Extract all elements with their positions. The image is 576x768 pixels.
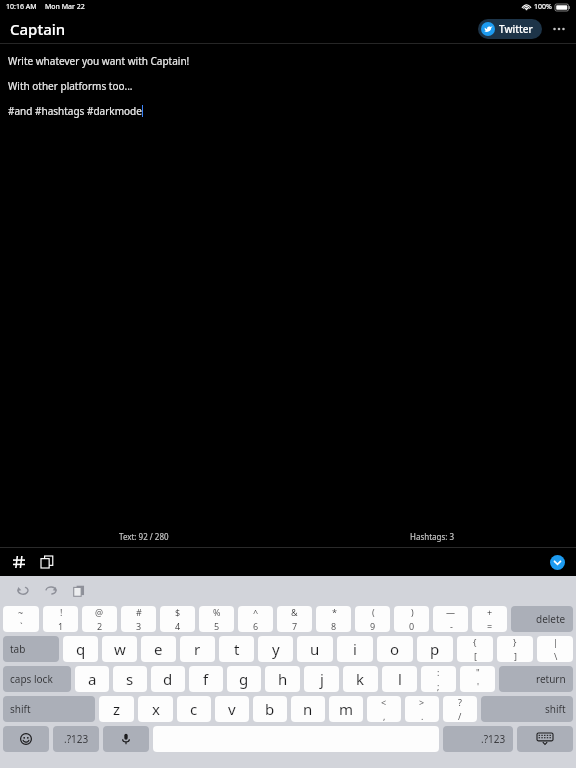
staticText: caps lock <box>10 672 53 686</box>
button[interactable]: j <box>304 666 339 692</box>
staticText: : <box>437 666 440 678</box>
button[interactable]: return <box>499 666 573 692</box>
button[interactable]: > <box>405 696 439 722</box>
staticText: Captain <box>10 19 66 39</box>
button[interactable]: r <box>180 636 215 662</box>
button[interactable]: Twitter <box>478 19 542 39</box>
button[interactable]: h <box>265 666 300 692</box>
button[interactable]: % <box>199 606 234 632</box>
button[interactable]: tab <box>3 636 59 662</box>
staticText: ! <box>60 606 63 618</box>
staticText: k <box>356 669 365 689</box>
button[interactable]: Paste <box>69 581 89 601</box>
button[interactable]: caps lock <box>3 666 71 692</box>
button[interactable]: @ <box>82 606 117 632</box>
button[interactable]: " <box>460 666 495 692</box>
button[interactable]: { <box>457 636 493 662</box>
button[interactable]: : <box>421 666 456 692</box>
button[interactable]: .?123 <box>443 726 513 752</box>
button[interactable]: m <box>329 696 363 722</box>
button[interactable]: | <box>537 636 573 662</box>
button[interactable]: w <box>102 636 137 662</box>
button[interactable]: k <box>343 666 378 692</box>
button[interactable]: & <box>277 606 312 632</box>
button[interactable]: # <box>121 606 156 632</box>
button[interactable]: delete <box>511 606 573 632</box>
button[interactable]: Undo <box>13 581 33 601</box>
button[interactable]: e <box>141 636 176 662</box>
button[interactable]: l <box>382 666 417 692</box>
staticText: & <box>291 606 298 618</box>
button[interactable]: g <box>227 666 261 692</box>
button[interactable]: Redo <box>41 581 61 601</box>
button[interactable]: } <box>497 636 533 662</box>
staticText: delete <box>536 612 566 626</box>
staticText: u <box>310 639 320 659</box>
staticText: 100% <box>534 2 552 12</box>
staticText: @ <box>95 606 104 618</box>
button[interactable]: .?123 <box>53 726 99 752</box>
button[interactable]: p <box>417 636 453 662</box>
button[interactable]: n <box>291 696 325 722</box>
button[interactable]: Insert hashtag <box>8 551 30 573</box>
button[interactable]: ~ <box>3 606 39 632</box>
button[interactable]: t <box>219 636 254 662</box>
button[interactable]: ) <box>394 606 429 632</box>
button[interactable]: $ <box>160 606 195 632</box>
button[interactable]: z <box>99 696 134 722</box>
staticText: . <box>421 710 424 722</box>
button[interactable]: ! <box>43 606 78 632</box>
staticText: ( <box>372 606 375 618</box>
button[interactable]: x <box>138 696 173 722</box>
button[interactable]: More options <box>550 20 568 38</box>
staticText: i <box>353 639 357 659</box>
button[interactable]: Copy <box>36 551 58 573</box>
button[interactable]: i <box>337 636 373 662</box>
staticText: > <box>419 696 425 708</box>
button[interactable]: f <box>189 666 223 692</box>
button[interactable]: ^ <box>238 606 273 632</box>
staticText: z <box>113 699 121 719</box>
staticText: Text: 92 / 280 <box>119 531 169 542</box>
staticText: ~ <box>18 606 24 618</box>
button[interactable]: shift <box>3 696 95 722</box>
button[interactable]: q <box>63 636 98 662</box>
button[interactable]: ? <box>443 696 477 722</box>
staticText: , <box>383 710 386 722</box>
button[interactable]: v <box>215 696 249 722</box>
button[interactable]: d <box>151 666 185 692</box>
staticText: 1 <box>58 620 64 632</box>
button[interactable]: y <box>258 636 293 662</box>
button[interactable]: a <box>75 666 109 692</box>
staticText: - <box>450 620 453 632</box>
button[interactable]: shift <box>481 696 573 722</box>
staticText: 4 <box>175 620 181 632</box>
staticText: ` <box>20 620 23 632</box>
staticText: t <box>234 639 240 659</box>
staticText: ] <box>514 650 517 662</box>
button[interactable]: Hide keyboard <box>546 551 568 573</box>
button[interactable]: + <box>472 606 507 632</box>
button[interactable]: c <box>177 696 211 722</box>
button[interactable]: o <box>377 636 413 662</box>
button[interactable]: Emoji <box>3 726 49 752</box>
staticText: return <box>536 672 566 686</box>
button[interactable]: < <box>367 696 401 722</box>
button[interactable]: * <box>316 606 351 632</box>
staticText: [ <box>474 650 477 662</box>
button[interactable]: — <box>433 606 468 632</box>
staticText: % <box>213 606 221 618</box>
button[interactable]: ( <box>355 606 390 632</box>
staticText: With other platforms too... <box>8 79 133 93</box>
button[interactable]: u <box>297 636 333 662</box>
button[interactable]: b <box>253 696 287 722</box>
staticText: v <box>228 699 236 719</box>
button[interactable]: Dismiss keyboard <box>517 726 573 752</box>
staticText: d <box>163 669 173 689</box>
button[interactable]: Dictation <box>103 726 149 752</box>
staticText: 9 <box>370 620 376 632</box>
button[interactable]: s <box>113 666 147 692</box>
staticText: \ <box>554 650 558 662</box>
staticText: a <box>88 669 97 689</box>
